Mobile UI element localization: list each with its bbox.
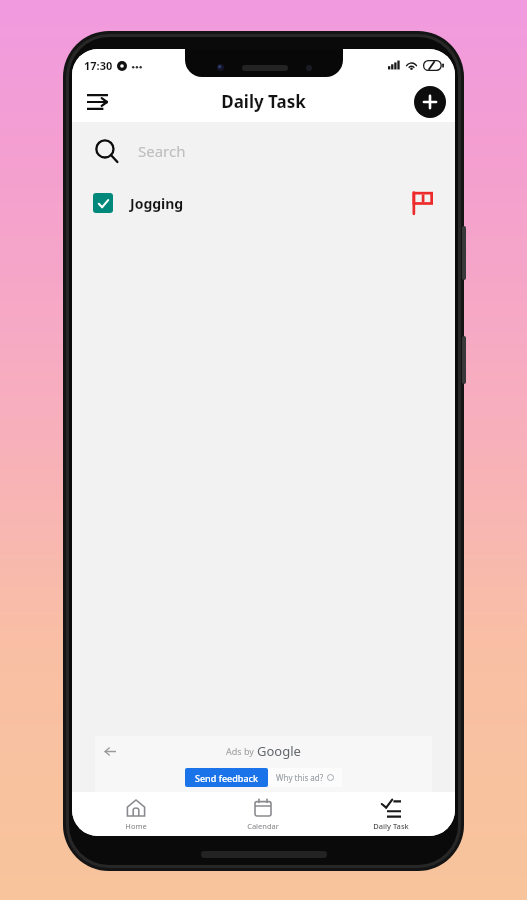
staticText: Send feedback (195, 772, 258, 784)
button[interactable]: Search (72, 122, 455, 180)
staticText: Daily Task (221, 90, 306, 113)
staticText: Ads by (226, 745, 257, 757)
button[interactable]: Calendar (199, 792, 327, 836)
button[interactable]: Flag task (407, 188, 437, 218)
staticText: Daily Task (373, 821, 409, 831)
button[interactable]: Why this ad? (268, 768, 342, 787)
button[interactable]: Home (72, 792, 199, 836)
button[interactable]: Open menu (80, 85, 114, 119)
staticText: Jogging (130, 194, 184, 213)
staticText: Home (125, 821, 147, 831)
button[interactable]: Daily Task (327, 792, 455, 836)
staticText: Search (138, 141, 186, 161)
button[interactable]: Send feedback (185, 768, 268, 787)
button[interactable]: Jogging completed (93, 193, 113, 213)
button[interactable]: Add task (414, 86, 446, 118)
staticText: Calendar (247, 821, 279, 831)
staticText: Google (257, 742, 301, 760)
staticText: Why this ad? (276, 772, 324, 783)
staticText: 17:30 (84, 58, 113, 73)
button[interactable]: Jogging completed (72, 180, 455, 226)
